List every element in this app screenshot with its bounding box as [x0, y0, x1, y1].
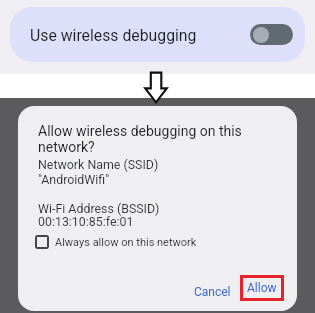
staticText: Wi-Fi Address (BSSID) 00:13:10:85:fe:01 — [38, 201, 160, 229]
staticText: Allow — [247, 281, 277, 295]
button[interactable]: Use wireless debugging — [10, 7, 305, 62]
button[interactable]: Cancel — [194, 285, 231, 299]
button[interactable]: Always allow on this network — [35, 235, 197, 249]
staticText: Use wireless debugging — [30, 26, 197, 45]
staticText: Allow wireless debugging on this network… — [38, 123, 250, 156]
staticText: Network Name (SSID) "AndroidWifi" — [38, 157, 159, 187]
staticText: Always allow on this network — [55, 236, 197, 249]
staticText: Cancel — [194, 285, 231, 299]
button[interactable]: Allow — [240, 275, 284, 301]
button[interactable]: Toggle wireless debugging off — [250, 24, 293, 45]
